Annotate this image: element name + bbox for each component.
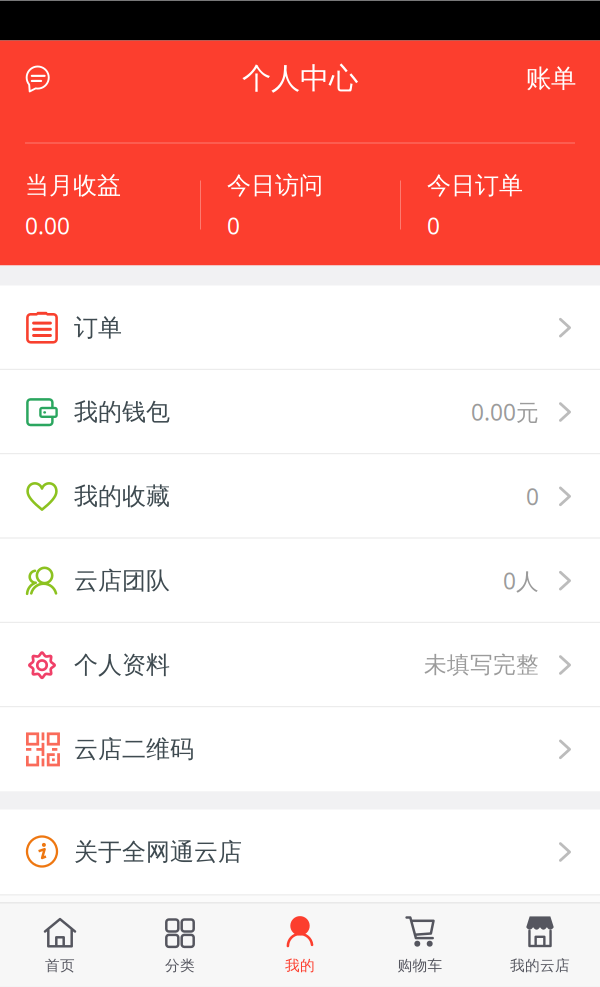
- staticText: 当月收益: [25, 171, 121, 200]
- staticText: 购物车: [397, 957, 442, 975]
- staticText: 0: [526, 481, 539, 511]
- staticText: 我的钱包: [74, 397, 170, 427]
- staticText: 今日访问: [227, 171, 323, 200]
- staticText: 账单: [526, 63, 576, 94]
- staticText: 今日订单: [427, 171, 523, 200]
- button[interactable]: 关于全网通云店: [0, 810, 600, 894]
- staticText: 分类: [165, 957, 195, 975]
- staticText: 首页: [45, 957, 75, 975]
- staticText: 未填写完整: [424, 651, 539, 679]
- staticText: 0.00: [25, 211, 70, 241]
- button[interactable]: 我的钱包: [0, 370, 600, 454]
- staticText: 我的收藏: [74, 482, 170, 511]
- staticText: 我的: [285, 957, 315, 975]
- staticText: 个人中心: [242, 60, 358, 96]
- staticText: 我的云店: [510, 957, 570, 975]
- button[interactable]: 账单: [516, 53, 586, 103]
- staticText: 个人资料: [74, 650, 170, 680]
- staticText: 云店二维码: [74, 735, 194, 764]
- staticText: 0.00元: [471, 397, 539, 427]
- button[interactable]: 云店团队: [0, 538, 600, 623]
- button[interactable]: 我的云店: [480, 903, 600, 986]
- staticText: 0人: [503, 566, 539, 596]
- button[interactable]: 我的: [240, 903, 360, 986]
- button[interactable]: 我的收藏: [0, 454, 600, 538]
- button[interactable]: 分类: [120, 903, 240, 986]
- staticText: 关于全网通云店: [74, 837, 242, 867]
- staticText: 0: [227, 211, 240, 241]
- button[interactable]: 购物车: [360, 903, 480, 986]
- button[interactable]: 消息: [12, 53, 64, 109]
- button[interactable]: 个人资料: [0, 623, 600, 707]
- button[interactable]: 首页: [0, 903, 120, 986]
- staticText: 订单: [74, 313, 122, 342]
- button[interactable]: 云店二维码: [0, 707, 600, 791]
- staticText: 云店团队: [74, 566, 170, 595]
- staticText: 0: [427, 211, 440, 241]
- button[interactable]: 订单: [0, 285, 600, 370]
